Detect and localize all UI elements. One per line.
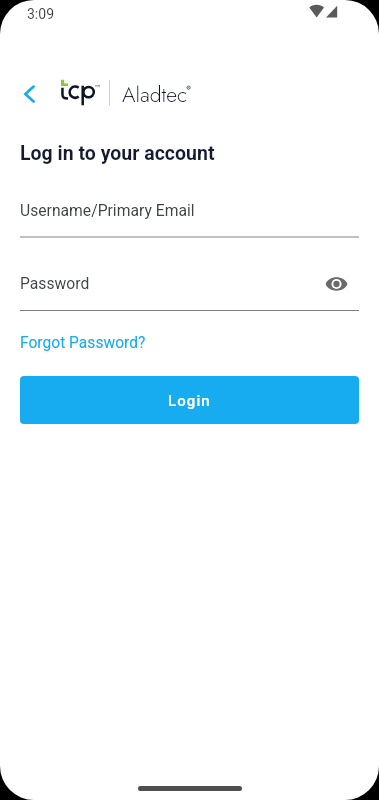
button[interactable]: Show password (322, 270, 350, 298)
staticText: Login (168, 392, 211, 410)
staticText: 3:09 (27, 6, 54, 22)
button[interactable]: Back (14, 78, 46, 110)
button[interactable]: Forgot Password? (20, 334, 146, 352)
staticText: Password (20, 274, 90, 292)
staticText: Forgot Password? (20, 334, 146, 352)
staticText: Username/Primary Email (20, 201, 195, 219)
button[interactable]: Username/Primary Email (20, 194, 359, 238)
staticText: Log in to your account (20, 142, 215, 165)
staticText: Aladtec (122, 79, 188, 110)
button[interactable]: Password (20, 266, 359, 311)
button[interactable]: Login (20, 376, 359, 424)
